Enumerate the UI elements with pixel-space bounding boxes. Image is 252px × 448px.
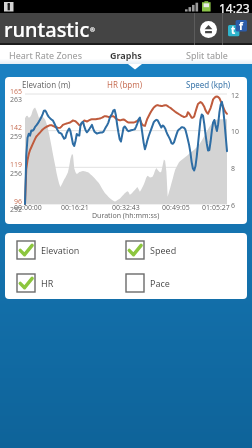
staticText: 10 <box>231 127 240 137</box>
button[interactable]: HR <box>17 274 126 292</box>
staticText: HR <box>41 277 54 289</box>
staticText: HR (bpm) <box>107 79 143 90</box>
staticText: 256 <box>10 169 23 179</box>
staticText: 6 <box>231 201 236 211</box>
staticText: 00:16:21 <box>61 203 89 213</box>
staticText: 14:23 <box>219 0 250 13</box>
button[interactable]: Graphs <box>90 45 161 64</box>
staticText: Heart Rate Zones <box>9 49 82 61</box>
staticText: 8 <box>231 164 236 174</box>
staticText: Graphs <box>110 49 142 61</box>
staticText: Elevation (m) <box>22 79 71 90</box>
staticText: 01:05:27 <box>202 203 230 213</box>
button[interactable]: Pace <box>126 274 247 292</box>
staticText: 00:49:05 <box>162 203 190 213</box>
button[interactable]: Upload <box>195 13 222 45</box>
staticText: 263 <box>10 95 23 105</box>
staticText: 119 <box>10 160 23 170</box>
staticText: t <box>231 23 236 37</box>
staticText: runtastic <box>4 16 90 43</box>
staticText: Pace <box>150 277 170 289</box>
staticText: 259 <box>10 132 23 142</box>
staticText: Split table <box>186 49 228 61</box>
staticText: 12 <box>231 91 240 101</box>
button[interactable]: Share on Facebook and Twitter <box>223 13 252 45</box>
staticText: ® <box>90 26 95 34</box>
staticText: 165 <box>10 87 23 97</box>
button[interactable]: Speed <box>126 241 247 259</box>
staticText: Duration (hh:mm:ss) <box>92 211 160 221</box>
staticText: Elevation <box>41 244 80 256</box>
staticText: 142 <box>10 123 23 133</box>
button[interactable]: Elevation <box>17 241 126 259</box>
staticText: f <box>239 19 243 33</box>
staticText: 00:00:00 <box>14 203 42 213</box>
staticText: Speed (kph) <box>186 79 231 90</box>
staticText: Speed <box>150 244 177 256</box>
staticText: 252 <box>10 205 23 215</box>
button[interactable]: Split table <box>161 45 252 64</box>
button[interactable]: Heart Rate Zones <box>0 45 90 64</box>
staticText: 96 <box>14 197 23 207</box>
staticText: 00:32:43 <box>112 203 140 213</box>
